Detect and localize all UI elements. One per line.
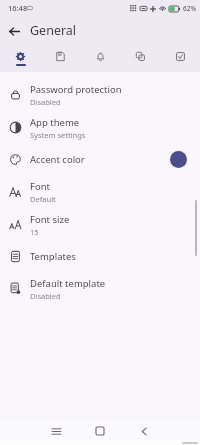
button[interactable]: Notifications: [80, 45, 120, 72]
button[interactable]: Password protection: [0, 78, 200, 111]
button[interactable]: Templates: [0, 241, 200, 272]
button[interactable]: Font: [0, 175, 200, 208]
button[interactable]: Accent color: [0, 144, 200, 175]
button[interactable]: Back: [4, 21, 24, 41]
button[interactable]: App theme: [0, 111, 200, 144]
button[interactable]: Copies: [120, 45, 160, 72]
staticText: Default template: [30, 277, 106, 290]
button[interactable]: Recents: [48, 423, 64, 439]
staticText: Password protection: [30, 83, 122, 96]
staticText: Default: [30, 194, 56, 204]
staticText: Disabled: [30, 97, 61, 107]
staticText: System settings: [30, 130, 86, 140]
staticText: General: [30, 22, 77, 39]
staticText: App theme: [30, 116, 80, 129]
staticText: 62%: [183, 4, 196, 13]
staticText: Font: [30, 180, 50, 193]
button[interactable]: Settings: [0, 45, 40, 72]
button[interactable]: Tasks: [160, 45, 200, 72]
button[interactable]: Default template: [0, 272, 200, 305]
button[interactable]: Save: [40, 45, 80, 72]
staticText: Disabled: [30, 291, 61, 301]
staticText: Accent color: [30, 153, 85, 166]
button[interactable]: Back: [136, 423, 152, 439]
staticText: Font size: [30, 213, 70, 226]
staticText: Templates: [30, 250, 76, 263]
staticText: 16:48: [8, 3, 28, 13]
staticText: 15: [30, 227, 39, 237]
button[interactable]: Home: [92, 423, 108, 439]
button[interactable]: Font size: [0, 208, 200, 241]
